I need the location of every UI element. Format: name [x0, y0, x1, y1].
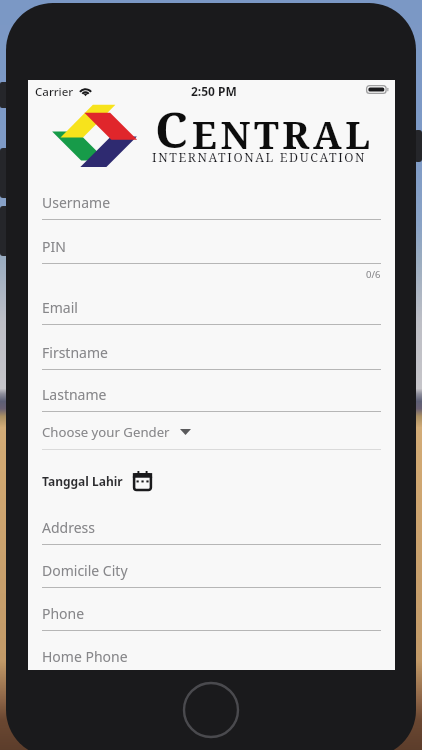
staticText: INTERNATIONAL EDUCATION	[152, 149, 367, 166]
button[interactable]: Address	[42, 518, 381, 545]
button[interactable]: Phone	[42, 604, 381, 631]
staticText: Domicile City	[42, 561, 128, 580]
staticText: C	[155, 96, 192, 163]
staticText: Phone	[42, 604, 85, 623]
button[interactable]: Domicile City	[42, 561, 381, 588]
staticText: Tanggal Lahir	[42, 473, 123, 489]
button[interactable]: Choose your Gender	[42, 423, 381, 450]
button[interactable]: Firstname	[42, 343, 381, 370]
other: Pick date	[132, 471, 153, 492]
button[interactable]: Email	[42, 298, 381, 325]
staticText: Address	[42, 518, 95, 537]
staticText: ENTRAL	[192, 108, 374, 160]
button[interactable]: Lastname	[42, 385, 381, 412]
button[interactable]: Tanggal Lahir	[42, 469, 381, 493]
staticText: Lastname	[42, 385, 107, 404]
staticText: Username	[42, 193, 111, 212]
staticText: 2:50 PM	[191, 83, 237, 99]
button[interactable]: Home Phone	[42, 647, 381, 669]
button[interactable]: Username	[42, 193, 381, 220]
button[interactable]: PIN	[42, 237, 381, 264]
staticText: Email	[42, 298, 78, 317]
staticText: Home Phone	[42, 647, 128, 666]
staticText: 0/6	[366, 268, 381, 281]
staticText: Choose your Gender	[42, 423, 170, 441]
staticText: PIN	[42, 237, 66, 256]
staticText: Carrier	[35, 84, 74, 100]
staticText: Firstname	[42, 343, 108, 362]
